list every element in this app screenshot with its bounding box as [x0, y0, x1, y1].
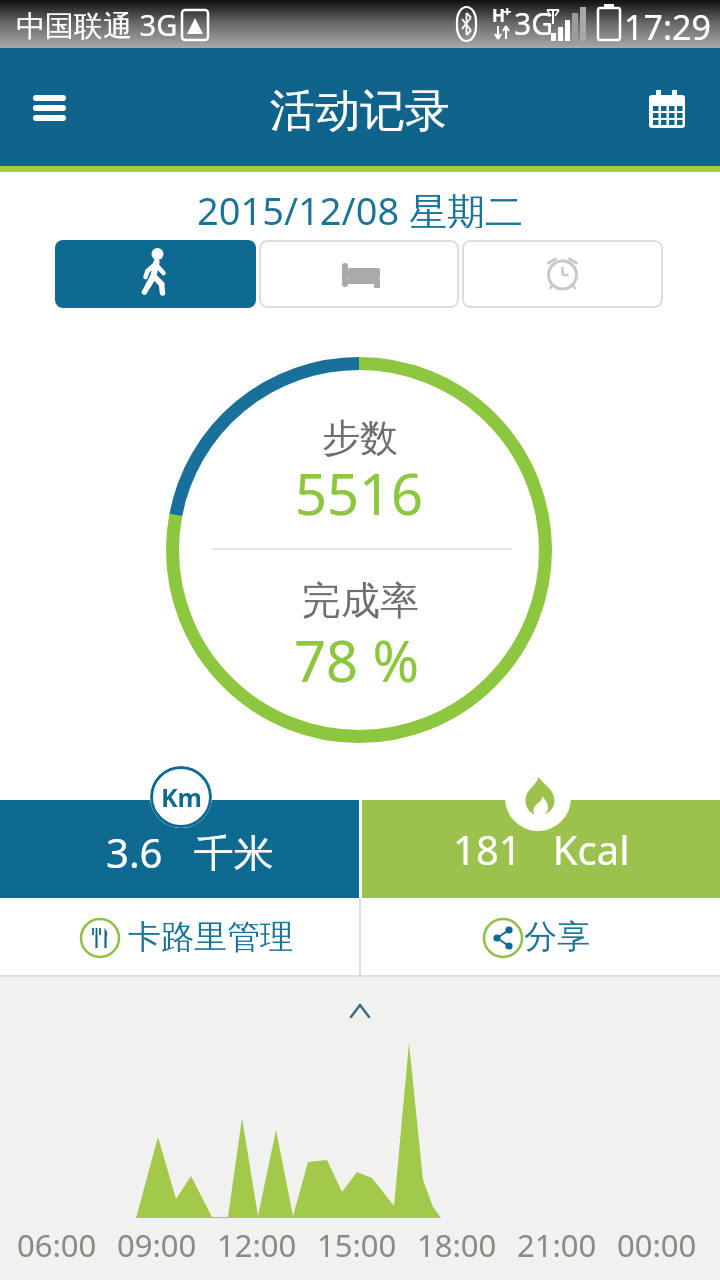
staticText: 5516: [295, 455, 424, 521]
button[interactable]: 分享: [361, 898, 720, 975]
staticText: 06:00: [17, 1224, 97, 1266]
staticText: 3.6 千米: [106, 825, 274, 871]
staticText: H: [492, 4, 506, 26]
staticText: 181 Kcal: [453, 822, 630, 868]
button[interactable]: [462, 240, 663, 308]
staticText: 12:00: [217, 1224, 297, 1266]
staticText: 中国联通 3G: [16, 5, 178, 45]
staticText: 21:00: [517, 1224, 597, 1266]
button[interactable]: [55, 240, 256, 308]
button[interactable]: [0, 800, 359, 898]
button[interactable]: [640, 83, 694, 133]
staticText: 00:00: [617, 1224, 697, 1266]
button[interactable]: 卡路里管理: [0, 898, 359, 975]
staticText: 3G: [514, 3, 553, 39]
staticText: 09:00: [117, 1224, 197, 1266]
staticText: 18:00: [417, 1224, 497, 1266]
button[interactable]: [362, 800, 720, 898]
staticText: Km: [161, 780, 202, 814]
staticText: 活动记录: [270, 83, 450, 135]
staticText: 17:29: [624, 4, 711, 46]
staticText: 15:00: [317, 1224, 397, 1266]
staticText: +: [503, 1, 512, 21]
staticText: 完成率: [302, 576, 419, 620]
staticText: 步数: [322, 414, 398, 458]
button[interactable]: [18, 78, 80, 136]
button[interactable]: [325, 991, 395, 1031]
staticText: 2015/12/08 星期二: [197, 184, 524, 228]
staticText: 卡路里管理: [128, 916, 293, 958]
staticText: 分享: [524, 916, 590, 958]
staticText: 78 %: [294, 622, 420, 688]
button[interactable]: [259, 240, 459, 308]
